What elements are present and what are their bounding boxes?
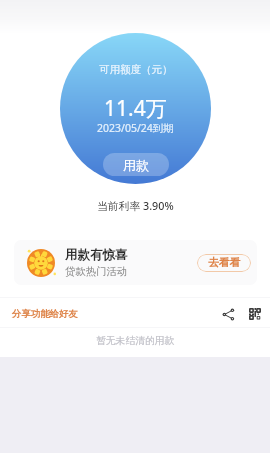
staticText: 11.4万 (104, 94, 167, 123)
staticText: 贷款热门活动 (65, 265, 128, 278)
button[interactable]: Share (218, 304, 238, 324)
button[interactable]: 用款有惊喜 (14, 240, 257, 285)
staticText: 用款有惊喜 (65, 247, 128, 263)
button[interactable]: QR code (245, 304, 265, 324)
staticText: 去看看 (208, 256, 241, 270)
staticText: 2023/05/24到期 (97, 121, 174, 135)
staticText: 暂无未结清的用款 (96, 335, 175, 347)
button[interactable]: 用款 (103, 153, 169, 176)
button[interactable]: 去看看 (197, 254, 251, 272)
staticText: 可用额度（元） (99, 63, 173, 76)
staticText: 用款 (123, 157, 149, 173)
staticText: 分享功能给好友 (12, 308, 78, 320)
staticText: 当前利率 3.90% (97, 198, 174, 213)
